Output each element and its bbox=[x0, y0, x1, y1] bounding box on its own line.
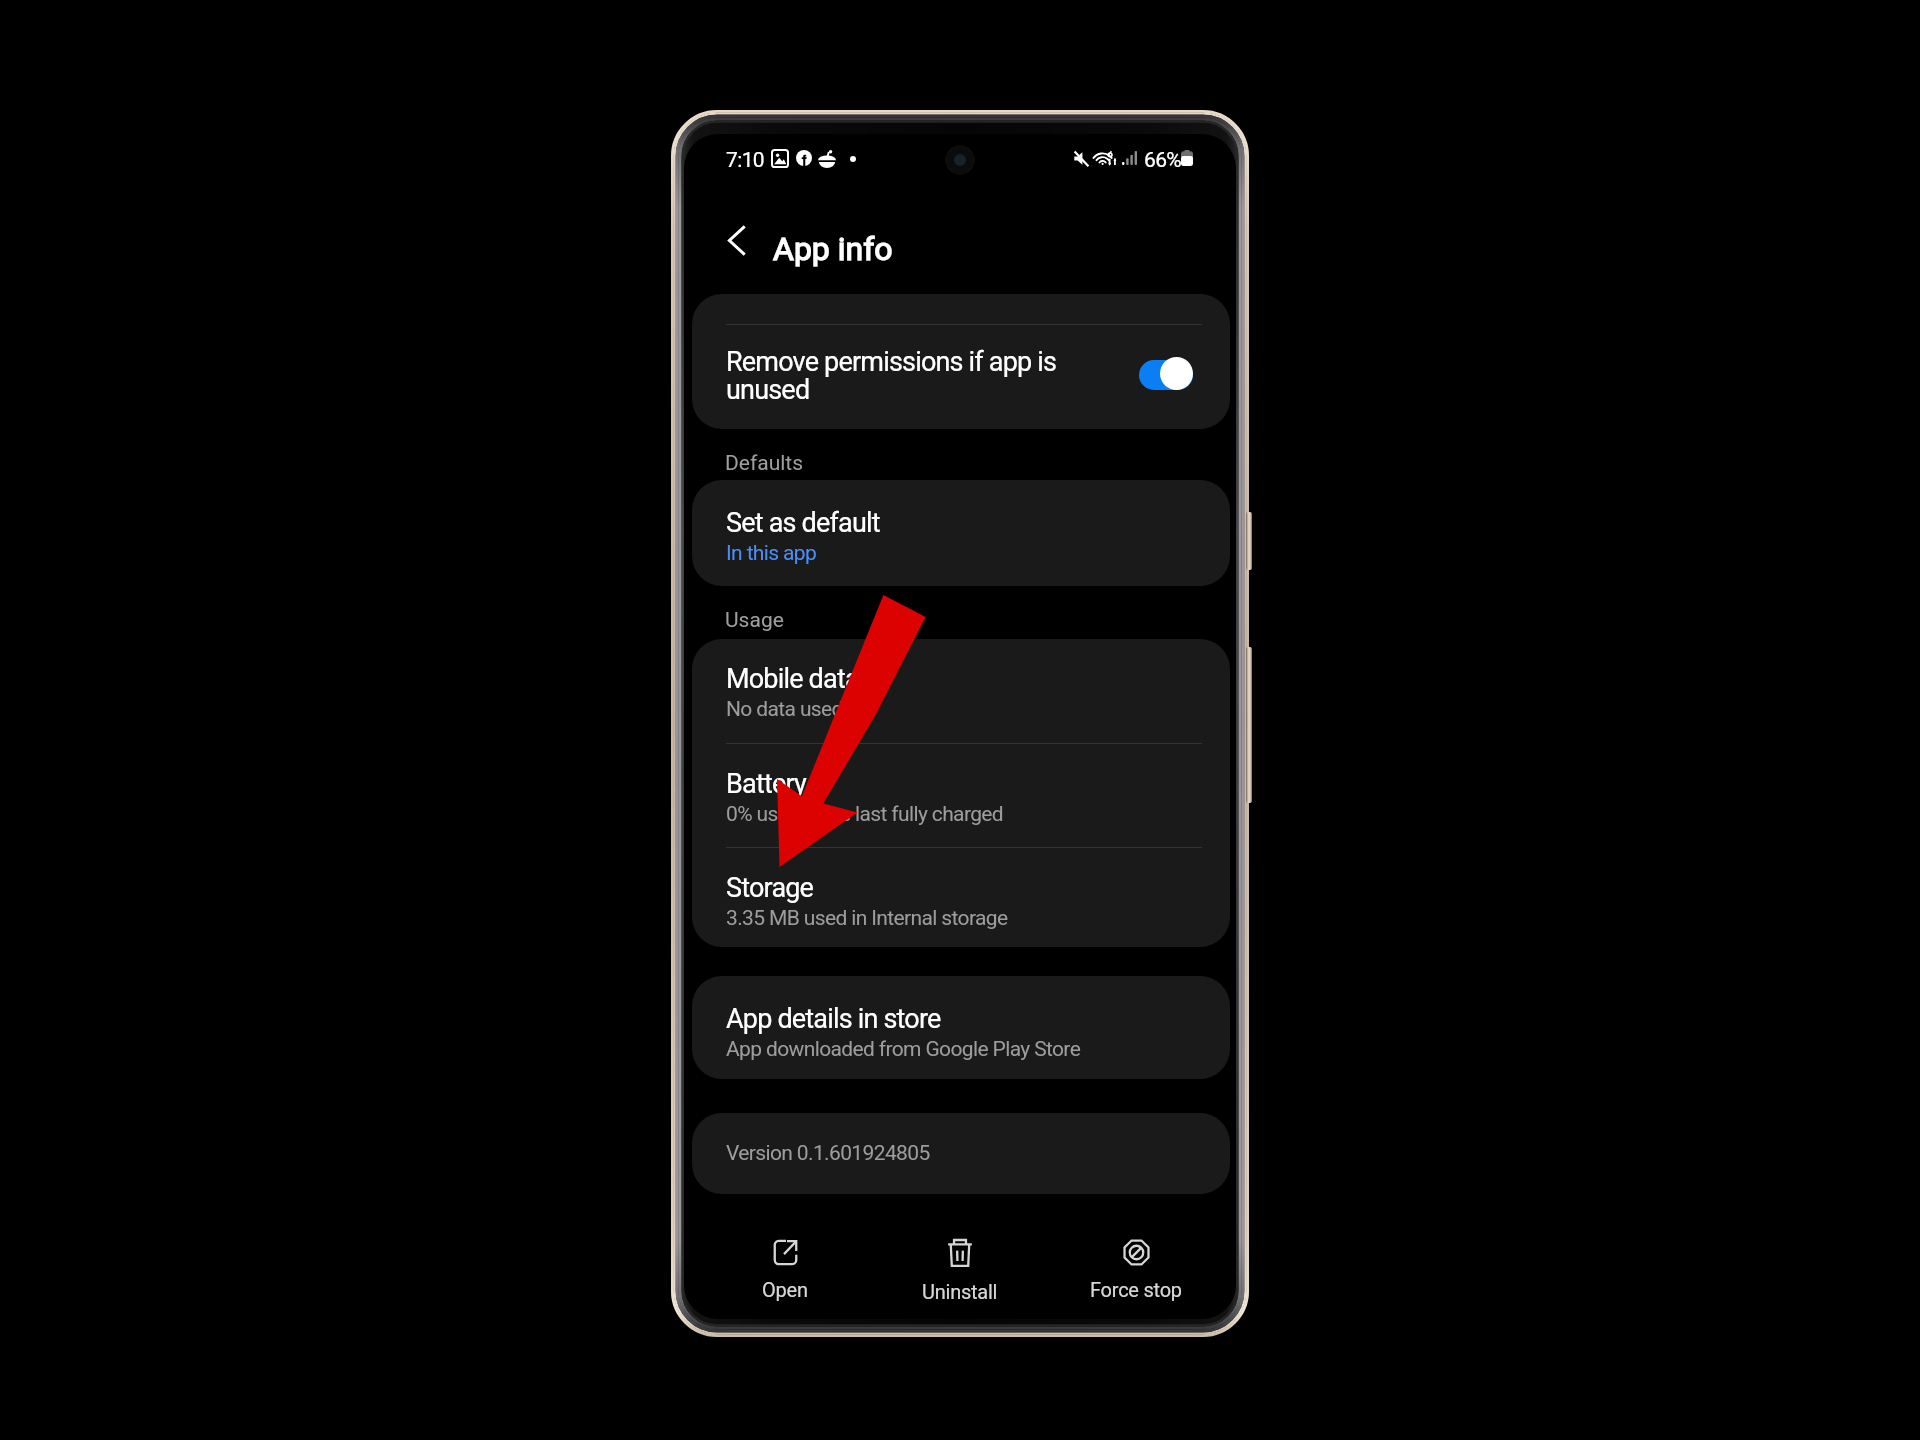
staticText: Remove permissions if app is unused bbox=[726, 346, 1057, 406]
button[interactable]: Storage bbox=[692, 848, 1230, 947]
staticText: In this app bbox=[726, 541, 817, 566]
staticText: 7:10 bbox=[726, 148, 764, 173]
staticText: 3.35 MB used in Internal storage bbox=[726, 906, 1008, 931]
staticText: App downloaded from Google Play Store bbox=[726, 1037, 1081, 1062]
button[interactable]: Mobile data bbox=[692, 639, 1230, 947]
staticText: No data used bbox=[726, 697, 843, 722]
button[interactable]: Force stop bbox=[1064, 1230, 1208, 1312]
staticText: Battery bbox=[726, 768, 806, 800]
button[interactable]: Set as default bbox=[692, 480, 1230, 586]
button[interactable]: Back bbox=[706, 210, 766, 270]
staticText: App info bbox=[773, 230, 893, 268]
button[interactable]: App details in store bbox=[692, 976, 1230, 1079]
staticText: Uninstall bbox=[922, 1280, 998, 1303]
staticText: 66% bbox=[1144, 148, 1182, 173]
button[interactable]: Open bbox=[713, 1230, 857, 1312]
button[interactable]: Remove permissions toggle bbox=[1139, 357, 1193, 390]
staticText: App details in store bbox=[726, 1003, 941, 1035]
staticText: Open bbox=[762, 1278, 808, 1301]
staticText: Force stop bbox=[1090, 1278, 1182, 1301]
staticText: Storage bbox=[726, 872, 814, 904]
staticText: Defaults bbox=[725, 451, 804, 476]
staticText: 0% used since last fully charged bbox=[726, 802, 1004, 827]
button[interactable]: Battery bbox=[692, 744, 1230, 847]
staticText: Version 0.1.601924805 bbox=[726, 1141, 930, 1166]
button[interactable]: Uninstall bbox=[888, 1230, 1032, 1312]
button[interactable]: Remove permissions if app is unused bbox=[692, 294, 1230, 429]
staticText: Usage bbox=[725, 608, 784, 633]
staticText: Set as default bbox=[726, 507, 880, 539]
button[interactable]: Mobile data bbox=[692, 639, 1230, 743]
staticText: Mobile data bbox=[726, 663, 859, 695]
button[interactable]: Version 0.1.601924805 bbox=[692, 1113, 1230, 1194]
